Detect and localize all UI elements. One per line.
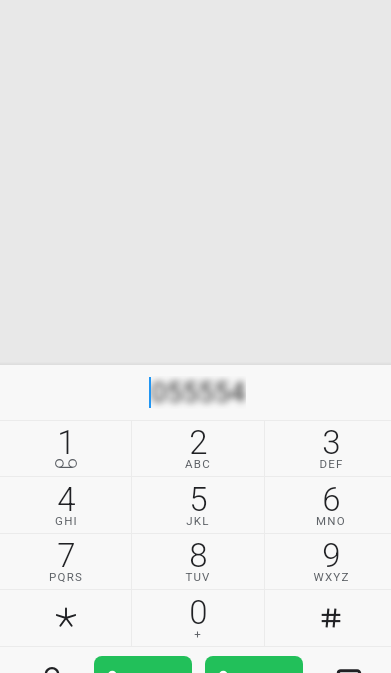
staticText: 2 xyxy=(189,423,208,462)
button[interactable]: 3 xyxy=(265,421,391,476)
staticText: DEF xyxy=(319,457,344,470)
button[interactable]: Video call xyxy=(36,652,68,673)
button[interactable]: Call xyxy=(94,656,192,673)
button[interactable]: 6 xyxy=(265,477,391,533)
button[interactable]: 2 xyxy=(132,421,264,476)
button[interactable]: 4 xyxy=(1,477,131,533)
staticText: 3 xyxy=(322,423,341,462)
staticText: GHI xyxy=(55,514,78,527)
button[interactable]: 1 xyxy=(1,421,131,476)
staticText: 6 xyxy=(322,480,341,519)
button[interactable]: Call xyxy=(205,656,303,673)
button[interactable]: 8 xyxy=(132,534,264,589)
staticText: + xyxy=(194,627,202,640)
button[interactable]: 5 xyxy=(132,477,264,533)
button[interactable]: 055554 xyxy=(0,365,391,420)
staticText: ABC xyxy=(185,457,211,470)
staticText: 055554 xyxy=(151,376,246,409)
button[interactable]: 7 xyxy=(1,534,131,589)
button[interactable]: Hide keypad xyxy=(332,652,366,673)
staticText: 1 xyxy=(57,423,76,462)
staticText: 0 xyxy=(189,593,208,632)
staticText: TUV xyxy=(185,570,211,583)
staticText: JKL xyxy=(186,514,210,527)
staticText: PQRS xyxy=(49,570,83,583)
button[interactable] xyxy=(1,590,131,646)
staticText: 7 xyxy=(57,536,76,575)
staticText: 8 xyxy=(189,536,208,575)
staticText: MNO xyxy=(316,514,346,527)
button[interactable]: 9 xyxy=(265,534,391,589)
staticText: 4 xyxy=(57,480,76,519)
button[interactable]: 0 xyxy=(132,590,264,646)
staticText: WXYZ xyxy=(313,570,350,583)
staticText: 9 xyxy=(322,536,341,575)
button[interactable] xyxy=(265,590,391,646)
staticText: 5 xyxy=(189,480,208,519)
